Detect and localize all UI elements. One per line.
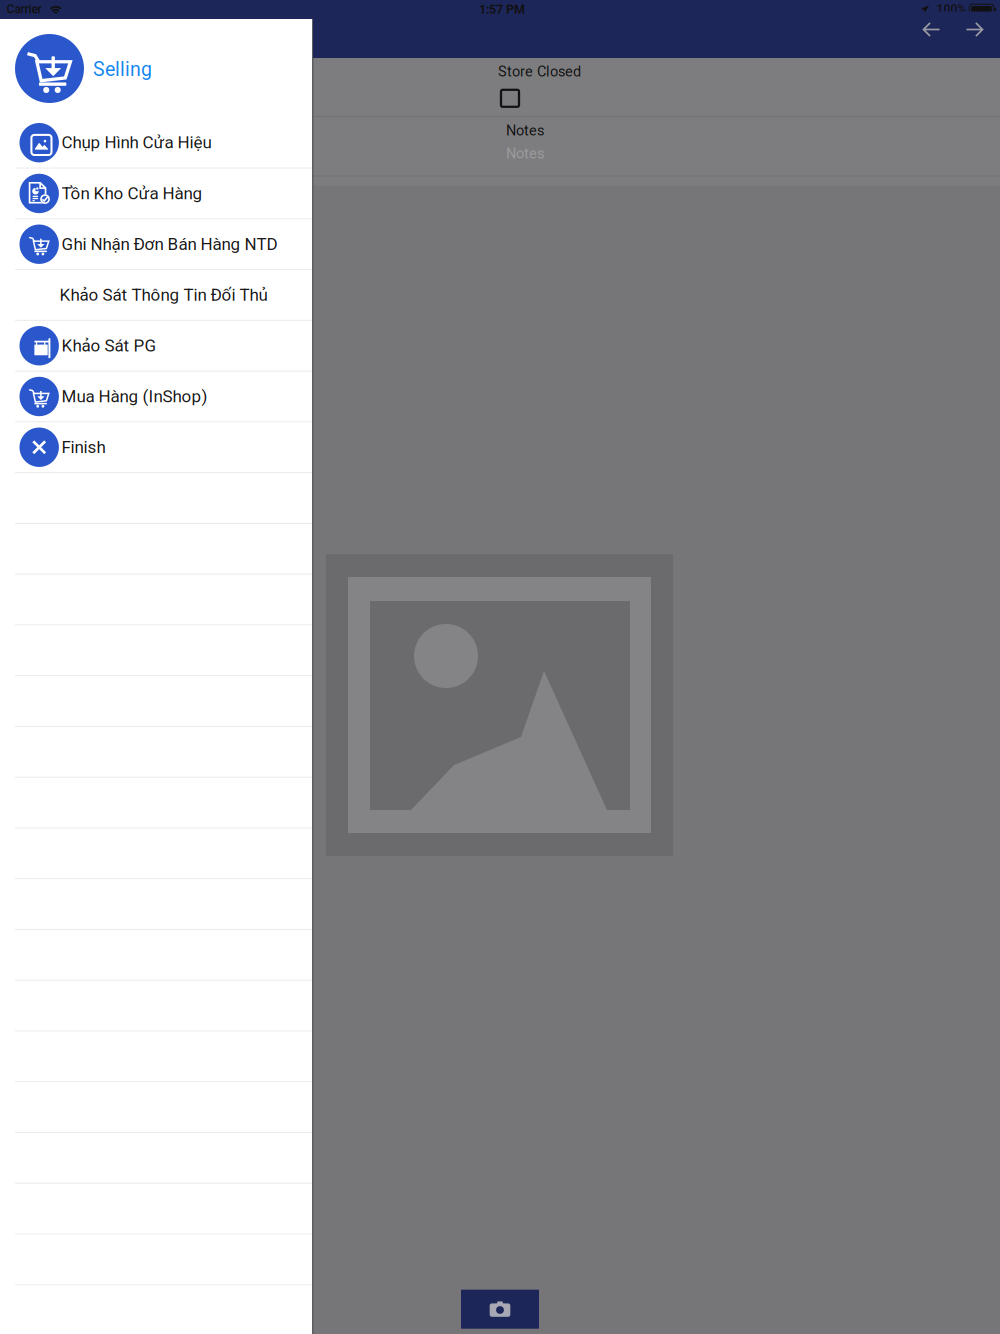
button[interactable]: Back (910, 11, 954, 47)
button[interactable]: Khảo Sát PG (0, 321, 312, 372)
staticText: Tồn Kho Cửa Hàng (61, 183, 202, 203)
staticText: Chụp Hình Cửa Hiệu (61, 133, 211, 152)
button[interactable]: Chụp Hình Cửa Hiệu (0, 118, 312, 169)
button[interactable]: Forward (953, 11, 997, 47)
button[interactable]: Mua Hàng (InShop) (0, 372, 312, 422)
button[interactable]: Tồn Kho Cửa Hàng (0, 169, 312, 219)
button[interactable]: Khảo Sát Thông Tin Đối Thủ (0, 270, 312, 321)
staticText: 100% (936, 2, 966, 16)
button[interactable]: Take photo (461, 1290, 539, 1329)
staticText: Store Closed (498, 63, 581, 80)
button[interactable]: Selling (0, 19, 312, 118)
staticText: Khảo Sát PG (61, 336, 156, 355)
staticText: Carrier (6, 2, 41, 16)
staticText: Notes (506, 145, 544, 162)
button[interactable]: Finish (0, 422, 312, 473)
staticText: 1:57 PM (479, 2, 525, 17)
staticText: Mua Hàng (InShop) (61, 386, 207, 406)
staticText: Khảo Sát Thông Tin Đối Thủ (59, 285, 267, 305)
staticText: Ghi Nhận Đơn Bán Hàng NTD (61, 234, 277, 254)
staticText: Notes (506, 122, 544, 139)
button[interactable]: Ghi Nhận Đơn Bán Hàng NTD (0, 219, 312, 270)
staticText: Finish (61, 437, 105, 457)
staticText: Selling (93, 58, 152, 81)
